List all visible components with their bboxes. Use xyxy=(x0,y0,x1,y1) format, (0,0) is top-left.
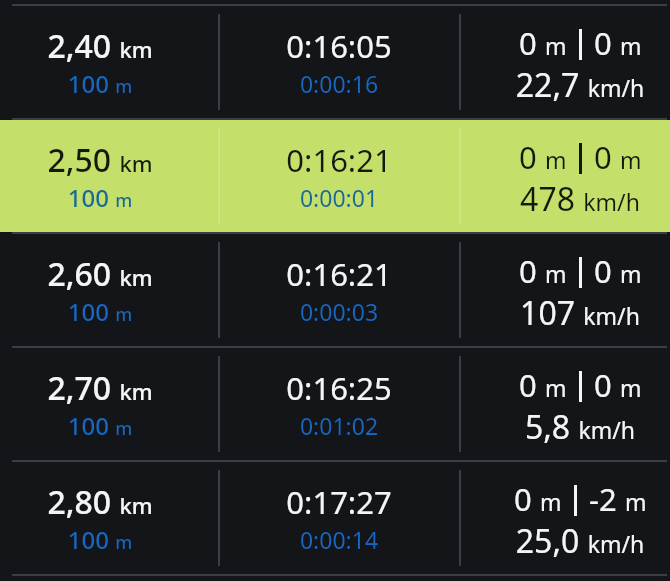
staticText: -2 xyxy=(589,478,617,520)
staticText: m xyxy=(620,258,642,289)
staticText: 0:00:01 xyxy=(169,182,509,213)
staticText: 0:17:27 xyxy=(169,481,509,523)
staticText: 107 km/h xyxy=(410,291,670,335)
staticText: m xyxy=(620,30,642,61)
staticText: 0:16:25 xyxy=(169,367,509,409)
staticText: 100 m xyxy=(0,409,270,442)
button[interactable]: Lap 2,70 km, 0:16:25, 5,8 kilometres per… xyxy=(0,348,670,460)
staticText: 22,7 km/h xyxy=(410,63,670,107)
staticText: 0 xyxy=(594,364,612,406)
staticText: m xyxy=(545,30,567,61)
button[interactable]: Lap 2,40 km, 0:16:05, 22,7 kilometres pe… xyxy=(0,6,670,118)
staticText: 2,70 km xyxy=(0,366,270,410)
button[interactable]: Lap 2,80 km, 0:17:27, 25,0 kilometres pe… xyxy=(0,462,670,574)
staticText: 0:01:02 xyxy=(169,410,509,441)
staticText: 0 xyxy=(594,250,612,292)
staticText: 0 xyxy=(519,250,537,292)
staticText: 0 xyxy=(514,478,532,520)
staticText: 478 km/h xyxy=(410,177,670,221)
staticText: m xyxy=(540,486,562,517)
staticText: m xyxy=(625,486,647,517)
staticText: m xyxy=(620,372,642,403)
staticText: 100 m xyxy=(0,67,270,100)
staticText: 0 xyxy=(594,22,612,64)
button[interactable]: Lap 2,50 km, 0:16:21, 478 kilometres per… xyxy=(0,120,670,232)
staticText: 2,60 km xyxy=(0,252,270,296)
staticText: 0 xyxy=(594,136,612,178)
staticText: 100 m xyxy=(0,295,270,328)
staticText: 0:16:21 xyxy=(169,253,509,295)
staticText: 0:00:16 xyxy=(169,68,509,99)
staticText: 0:16:21 xyxy=(169,139,509,181)
button[interactable]: Lap 2,60 km, 0:16:21, 107 kilometres per… xyxy=(0,234,670,346)
staticText: 0:00:03 xyxy=(169,296,509,327)
staticText: m xyxy=(545,372,567,403)
staticText: 100 m xyxy=(0,181,270,214)
staticText: m xyxy=(620,144,642,175)
staticText: m xyxy=(545,144,567,175)
staticText: 0 xyxy=(519,136,537,178)
staticText: m xyxy=(545,258,567,289)
staticText: 0 xyxy=(519,22,537,64)
staticText: 2,50 km xyxy=(0,138,270,182)
staticText: 2,80 km xyxy=(0,480,270,524)
staticText: 0:16:05 xyxy=(169,25,509,67)
staticText: 5,8 km/h xyxy=(410,405,670,449)
staticText: 0 xyxy=(519,364,537,406)
staticText: 25,0 km/h xyxy=(410,519,670,563)
staticText: 100 m xyxy=(0,523,270,556)
staticText: 0:00:14 xyxy=(169,524,509,555)
staticText: 2,40 km xyxy=(0,24,270,68)
